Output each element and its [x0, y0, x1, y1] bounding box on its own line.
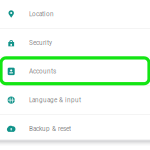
staticText: Backup & reset: [29, 125, 71, 133]
button[interactable]: Accounts: [0, 57, 150, 85]
button[interactable]: Language & input: [0, 86, 150, 114]
button[interactable]: Security: [0, 29, 150, 57]
button[interactable]: Backup & reset: [0, 115, 150, 143]
button[interactable]: Location: [0, 0, 150, 28]
staticText: Security: [29, 39, 52, 46]
staticText: Location: [29, 10, 54, 18]
staticText: Accounts: [29, 68, 56, 75]
staticText: Language & input: [29, 96, 81, 104]
